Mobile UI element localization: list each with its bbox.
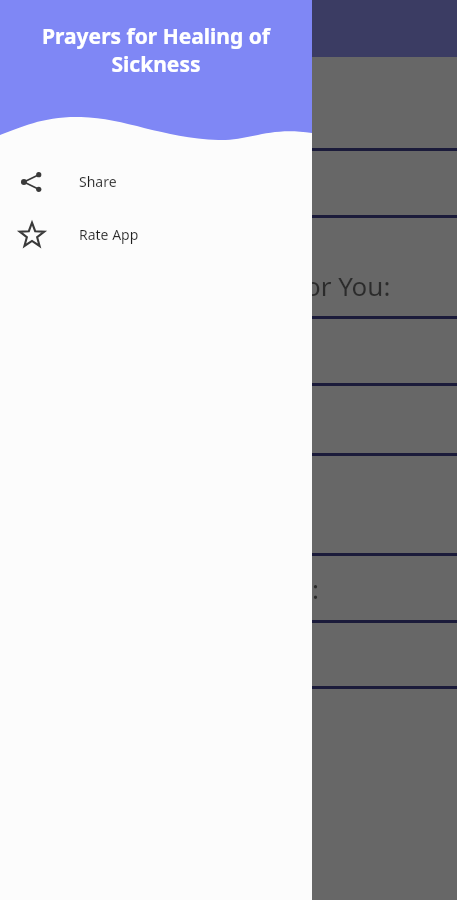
staticText: Prayer for Healing and [14,86,290,121]
button[interactable]: A Prayer for a Vision of [0,217,457,318]
button[interactable]: Prayer for Healing: [0,150,457,217]
staticText: Share [79,172,117,191]
button[interactable]: Prayer for Breakthrough: [0,555,457,622]
button[interactable]: A Prayer to Believe: [0,385,457,455]
button[interactable]: A Prayer for Renewed [0,455,457,555]
staticText: Prayer for Healing: [14,166,244,201]
staticText: What God Has in Store for You: [14,268,391,303]
staticText: Prayer for Breakthrough: [14,571,319,606]
button[interactable]: Prayer for Peace: [0,622,457,688]
other: Share [19,169,45,195]
staticText: A Prayer for a Vision of [14,233,292,268]
button[interactable]: Rate App [0,208,312,261]
staticText: Rate App [79,225,139,244]
staticText: Prayers for Healing of Sickness [22,22,290,78]
button[interactable]: Prayer for Healing and [0,57,457,150]
button[interactable]: A Prayer for Healing: [0,318,457,385]
button[interactable] [0,688,457,900]
button[interactable]: Share [0,155,312,208]
other: Rate App [18,221,46,249]
